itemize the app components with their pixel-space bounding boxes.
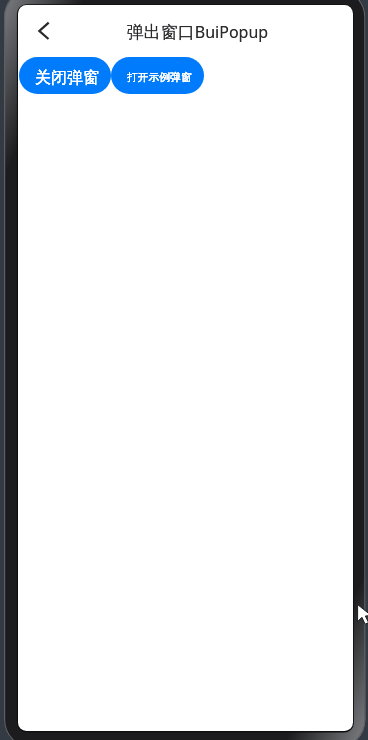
staticText: 弹出窗口BuiPopup: [30, 21, 353, 43]
button[interactable]: 关闭弹窗: [19, 57, 111, 94]
staticText: 关闭弹窗: [35, 68, 99, 88]
staticText: 关闭弹窗: [35, 68, 99, 88]
button[interactable]: Back: [22, 9, 66, 53]
staticText: 打开示例弹窗: [127, 71, 192, 85]
button[interactable]: 打开示例弹窗: [111, 57, 204, 94]
staticText: 打开示例弹窗: [127, 71, 192, 85]
staticText: 弹出窗口BuiPopup: [30, 21, 353, 43]
